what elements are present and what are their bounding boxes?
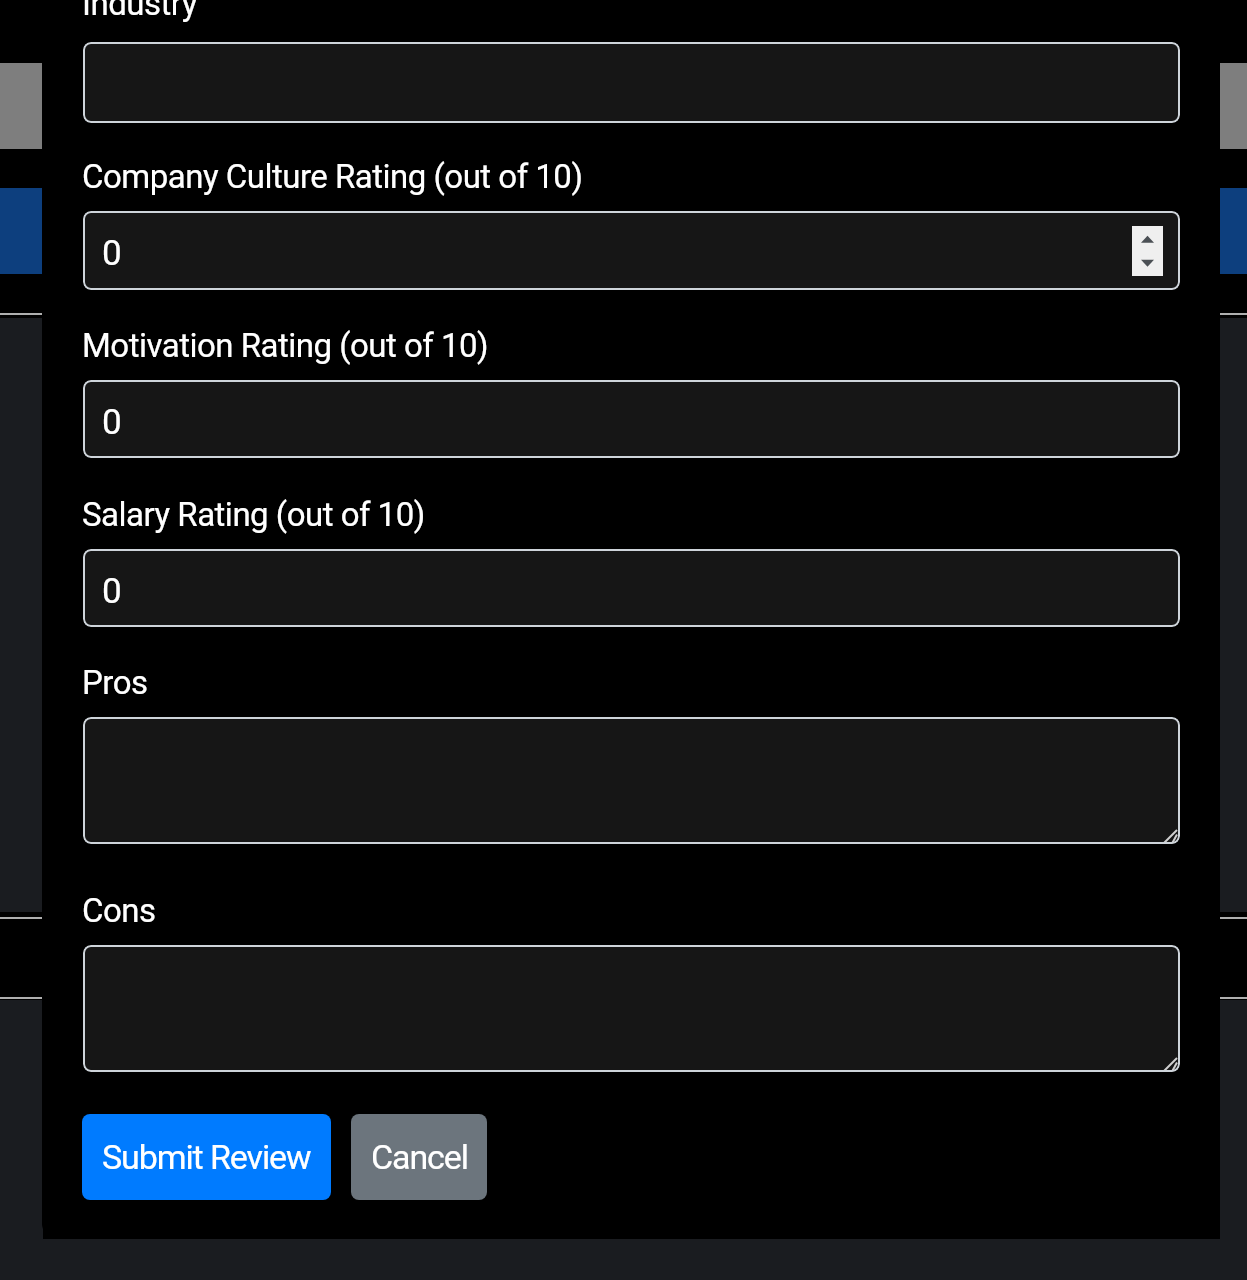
staticText: 0 <box>102 233 122 274</box>
button[interactable]: Submit Review <box>82 1114 331 1200</box>
staticText: Pros <box>82 663 148 702</box>
button[interactable]: Company Culture Rating <box>83 211 1180 290</box>
button[interactable]: Increment or decrement value <box>1132 226 1163 276</box>
staticText: Motivation Rating (out of 10) <box>82 326 489 365</box>
staticText: Cons <box>82 891 156 930</box>
button[interactable]: Cons <box>83 945 1180 1072</box>
staticText: 0 <box>102 571 122 612</box>
staticText: 0 <box>102 402 122 443</box>
staticText: Salary Rating (out of 10) <box>82 495 425 534</box>
staticText: Submit Review <box>102 1137 311 1177</box>
staticText: Cancel <box>371 1137 468 1177</box>
staticText: Company Culture Rating (out of 10) <box>82 157 583 196</box>
button[interactable]: Industry <box>83 42 1180 123</box>
button[interactable]: Salary Rating <box>83 549 1180 627</box>
staticText: Industry <box>82 0 197 23</box>
button[interactable]: Cancel <box>351 1114 487 1200</box>
button[interactable]: Motivation Rating <box>83 380 1180 458</box>
button[interactable]: Pros <box>83 717 1180 844</box>
